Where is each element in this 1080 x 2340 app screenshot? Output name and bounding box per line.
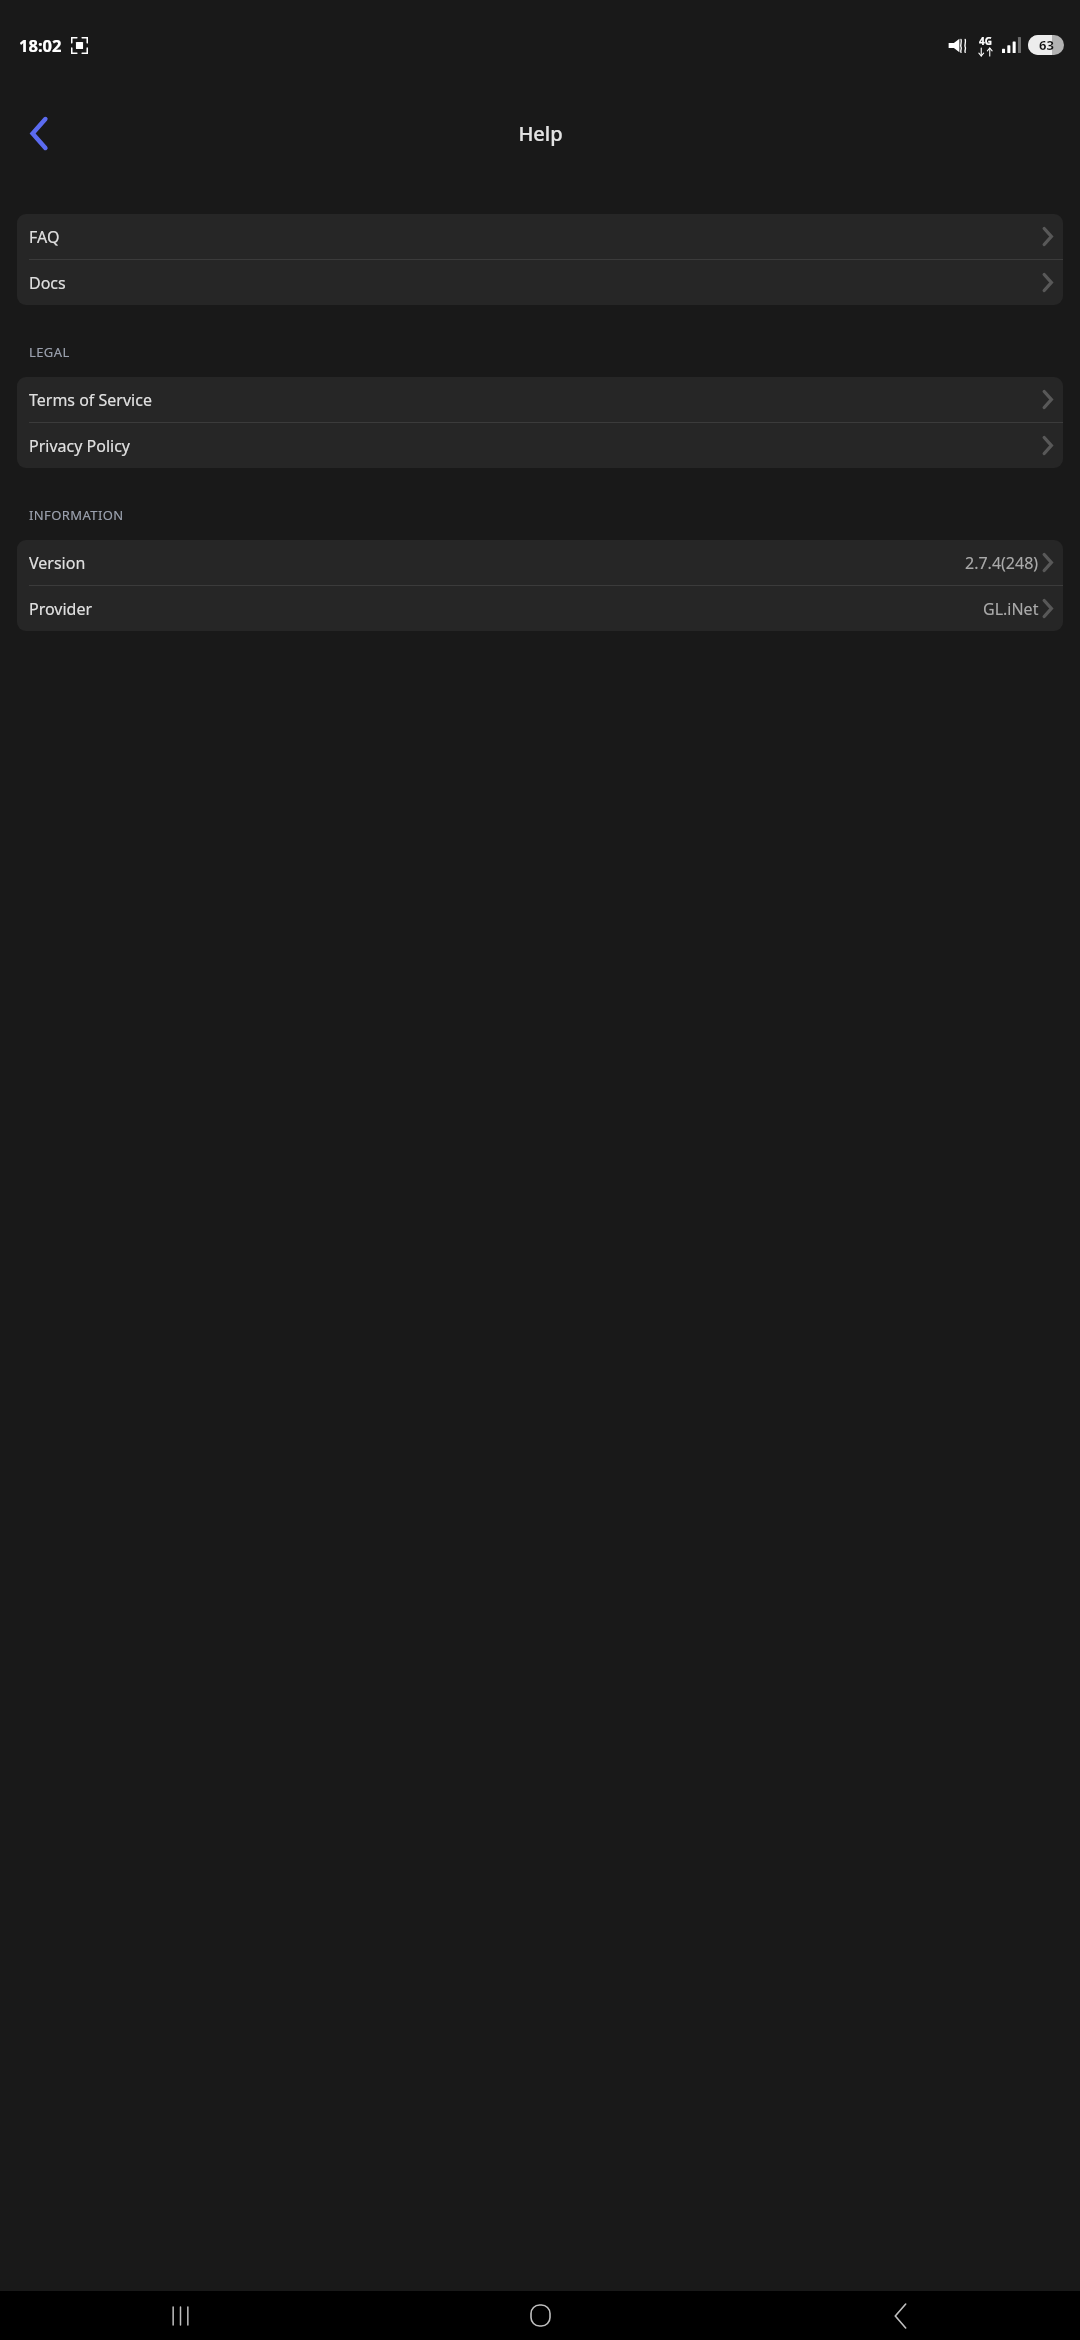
staticText: 18:02: [19, 34, 62, 56]
staticText: Help: [518, 120, 563, 147]
staticText: 4G: [979, 34, 992, 48]
button[interactable]: Terms of Service: [17, 377, 1063, 422]
staticText: 63: [1039, 36, 1054, 54]
button[interactable]: Back: [720, 2291, 1080, 2340]
staticText: Terms of Service: [29, 389, 152, 411]
staticText: FAQ: [29, 226, 60, 248]
staticText: Version: [29, 552, 86, 574]
button[interactable]: Provider: [17, 586, 1063, 631]
button[interactable]: Home: [360, 2291, 720, 2340]
button[interactable]: Recent apps: [0, 2291, 360, 2340]
button[interactable]: Back: [10, 104, 68, 162]
staticText: Provider: [29, 598, 93, 620]
staticText: 2.7.4(248): [965, 552, 1039, 574]
staticText: GL.iNet: [983, 598, 1039, 620]
staticText: Docs: [29, 272, 66, 294]
button[interactable]: Version: [17, 540, 1063, 585]
button[interactable]: FAQ: [17, 214, 1063, 259]
staticText: LEGAL: [29, 343, 70, 361]
staticText: INFORMATION: [29, 506, 124, 524]
button[interactable]: Docs: [17, 260, 1063, 305]
staticText: Privacy Policy: [29, 435, 130, 457]
button[interactable]: Privacy Policy: [17, 423, 1063, 468]
